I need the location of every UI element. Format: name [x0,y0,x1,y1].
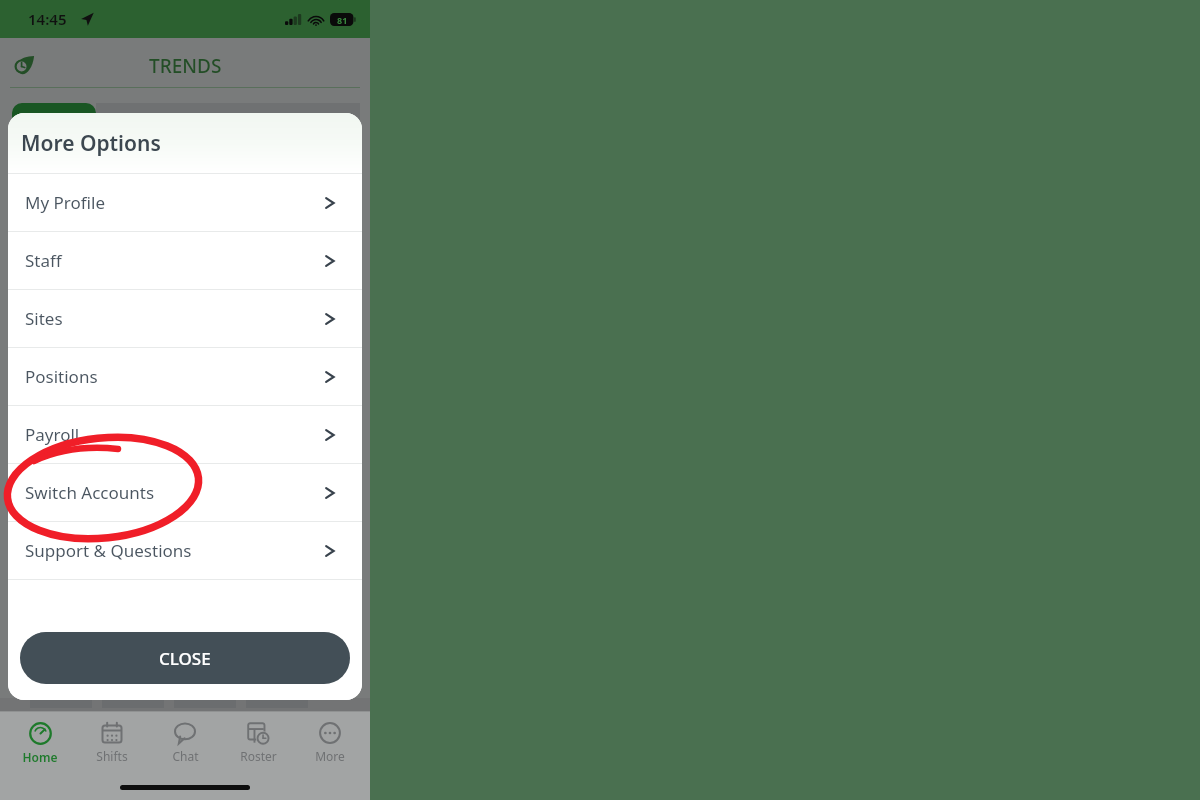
staticText: Switch Accounts [25,481,324,504]
button[interactable]: Sites [8,290,362,347]
staticText: CLOSE [159,647,211,670]
staticText: Support & Questions [25,539,324,562]
staticText: Shifts [96,748,128,764]
button[interactable]: Home [7,718,73,769]
staticText: More [315,748,345,764]
staticText: 81 [337,14,348,26]
staticText: CLOSE [159,647,211,670]
staticText: My Profile [25,191,324,214]
staticText: More Options [21,129,161,158]
staticText: Home [22,749,58,765]
button[interactable]: Positions [8,348,362,405]
staticText: Chat [172,748,199,764]
button[interactable]: Payroll [8,406,362,463]
button[interactable]: Support & Questions [8,522,362,579]
button[interactable]: Shifts [79,718,145,768]
button[interactable]: Staff [8,232,362,289]
button[interactable]: CLOSE [20,632,350,684]
button[interactable]: Switch Accounts [8,464,362,521]
button[interactable]: My Profile [8,174,362,231]
staticText: Sites [25,307,324,330]
staticText: Roster [240,748,277,764]
staticText: Positions [25,365,324,388]
staticText: 14:45 [28,9,67,29]
staticText: Payroll [25,423,324,446]
button[interactable]: Roster [225,718,291,768]
staticText: Staff [25,249,324,272]
button[interactable]: CLOSE [20,632,350,684]
button[interactable]: More [297,718,363,768]
button[interactable]: Chat [152,718,218,768]
staticText: TRENDS [149,53,222,79]
